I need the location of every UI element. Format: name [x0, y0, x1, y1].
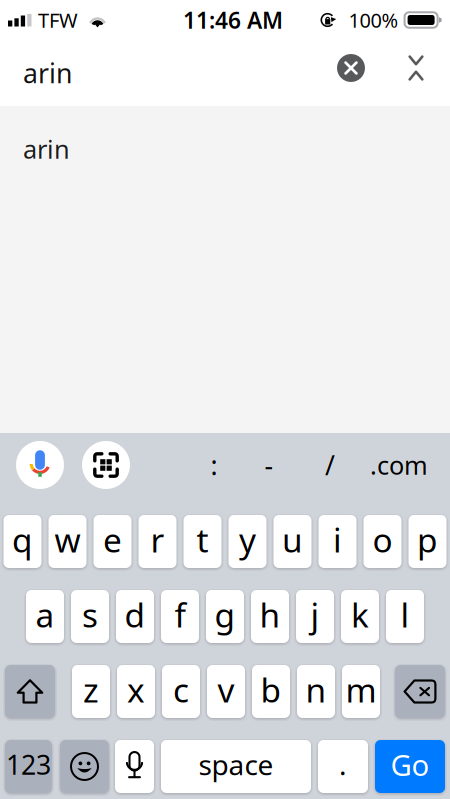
staticText: TFW: [38, 7, 78, 33]
button[interactable]: y: [228, 515, 266, 568]
button[interactable]: i: [318, 515, 356, 568]
staticText: k: [351, 592, 369, 637]
button[interactable]: -: [244, 442, 294, 488]
staticText: h: [259, 592, 280, 637]
button[interactable]: b: [252, 665, 290, 718]
button[interactable]: c: [162, 665, 200, 718]
button[interactable]: x: [117, 665, 155, 718]
button[interactable]: Go: [375, 740, 445, 793]
staticText: y: [239, 517, 256, 562]
staticText: c: [173, 667, 189, 712]
button[interactable]: j: [296, 590, 334, 643]
staticText: d: [124, 592, 145, 637]
staticText: u: [282, 517, 303, 562]
staticText: -: [264, 447, 273, 483]
button[interactable]: v: [207, 665, 245, 718]
staticText: f: [174, 592, 185, 637]
button[interactable]: d: [116, 590, 154, 643]
staticText: i: [333, 517, 342, 562]
staticText: a: [35, 592, 54, 637]
button[interactable]: Voice search: [16, 441, 64, 489]
staticText: .com: [370, 448, 428, 482]
button[interactable]: m: [342, 665, 380, 718]
button[interactable]: t: [183, 515, 221, 568]
button[interactable]: .com: [363, 442, 435, 488]
staticText: g: [214, 592, 235, 637]
button[interactable]: z: [72, 665, 110, 718]
button[interactable]: a: [26, 590, 64, 643]
staticText: p: [417, 517, 438, 562]
button[interactable]: g: [206, 590, 244, 643]
button[interactable]: :: [189, 442, 239, 488]
staticText: l: [400, 592, 409, 637]
button[interactable]: Emoji keyboard: [60, 740, 109, 793]
button[interactable]: Hide keyboard: [394, 46, 438, 90]
button[interactable]: u: [273, 515, 311, 568]
staticText: space: [198, 746, 273, 783]
staticText: v: [217, 667, 234, 712]
button[interactable]: k: [341, 590, 379, 643]
staticText: arin: [23, 132, 70, 166]
button[interactable]: h: [251, 590, 289, 643]
staticText: arin: [23, 55, 72, 91]
staticText: 100%: [349, 7, 399, 33]
button[interactable]: Shift: [5, 665, 55, 718]
staticText: 11:46 AM: [183, 5, 283, 35]
staticText: .: [339, 746, 347, 783]
button[interactable]: n: [297, 665, 335, 718]
button[interactable]: Delete: [395, 665, 445, 718]
staticText: o: [372, 517, 392, 562]
button[interactable]: Dictation: [115, 740, 154, 793]
staticText: x: [127, 667, 145, 712]
staticText: w: [54, 517, 80, 562]
staticText: q: [12, 517, 33, 562]
staticText: r: [150, 517, 164, 562]
staticText: b: [260, 667, 281, 712]
staticText: j: [310, 592, 319, 637]
button[interactable]: Clear text: [329, 46, 373, 90]
button[interactable]: Scan code: [82, 441, 130, 489]
button[interactable]: p: [408, 515, 446, 568]
staticText: /: [325, 447, 335, 483]
button[interactable]: .: [318, 740, 368, 793]
button[interactable]: space: [161, 740, 311, 793]
staticText: s: [82, 592, 98, 637]
button[interactable]: s: [71, 590, 109, 643]
staticText: z: [83, 667, 99, 712]
button[interactable]: /: [305, 442, 355, 488]
button[interactable]: arin: [0, 124, 450, 174]
button[interactable]: q: [3, 515, 41, 568]
staticText: m: [345, 667, 376, 712]
staticText: :: [210, 447, 217, 483]
button[interactable]: l: [386, 590, 424, 643]
staticText: Go: [390, 745, 429, 784]
staticText: e: [103, 517, 122, 562]
button[interactable]: w: [48, 515, 86, 568]
button[interactable]: o: [363, 515, 401, 568]
button[interactable]: r: [138, 515, 176, 568]
staticText: t: [196, 517, 208, 562]
button[interactable]: 123: [5, 740, 52, 793]
staticText: n: [305, 667, 326, 712]
button[interactable]: f: [161, 590, 199, 643]
button[interactable]: e: [93, 515, 131, 568]
staticText: 123: [6, 747, 51, 782]
